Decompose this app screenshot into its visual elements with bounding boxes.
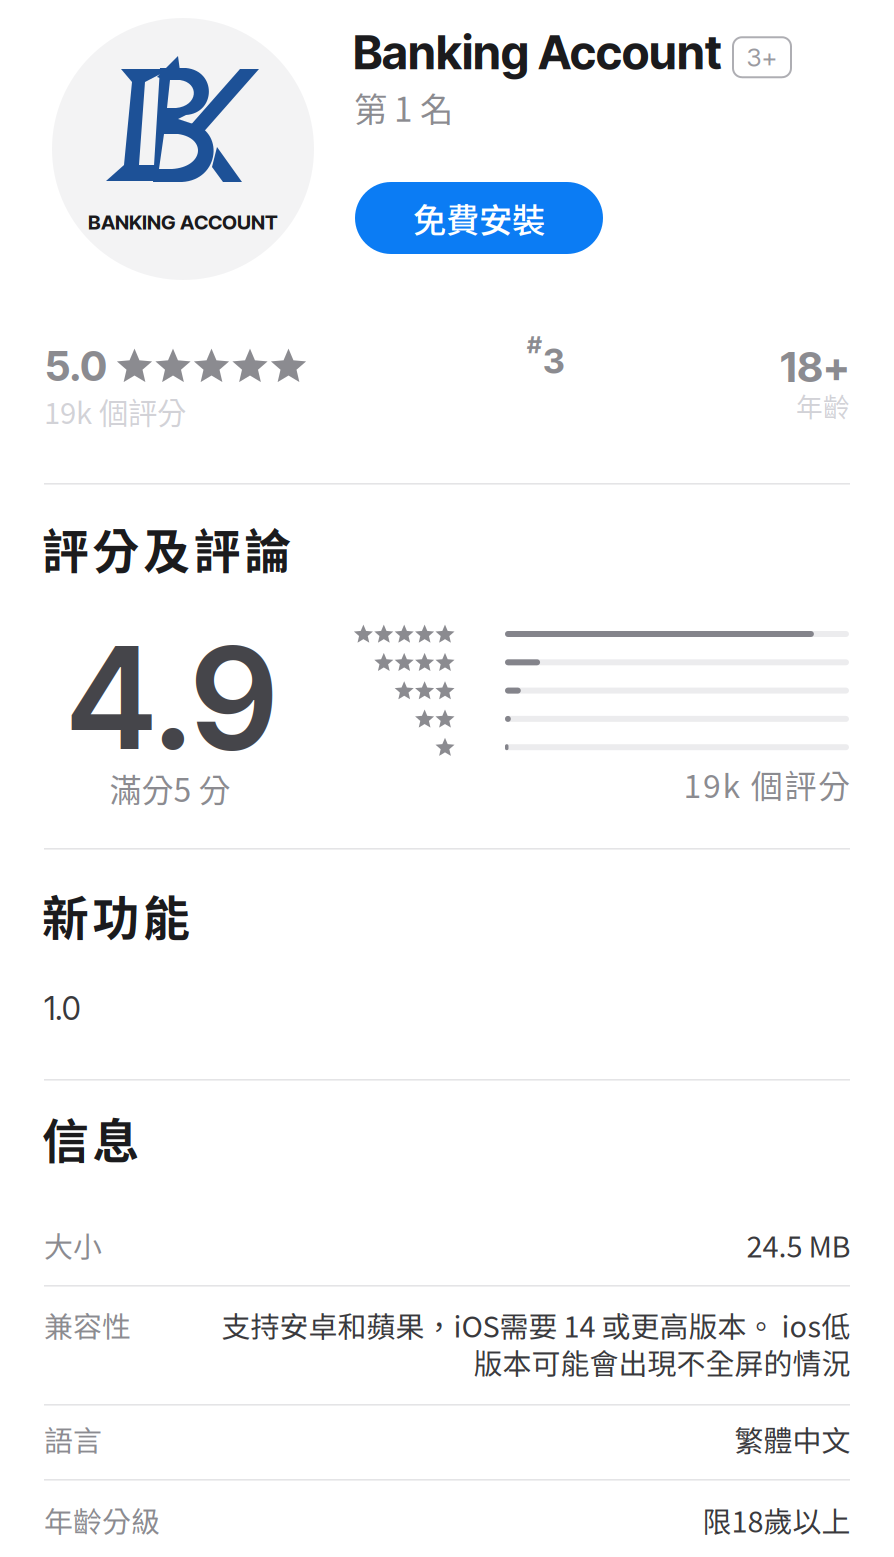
staticText: 免費安裝 xyxy=(413,194,545,242)
staticText: 3+ xyxy=(746,42,777,73)
staticText: 大小 xyxy=(44,1224,102,1266)
staticText: 年齡 xyxy=(796,386,850,425)
staticText: 語言 xyxy=(44,1418,102,1460)
staticText: 1.0 xyxy=(44,989,81,1028)
staticText: 3 xyxy=(543,340,565,382)
staticText: 18+ xyxy=(780,342,850,392)
staticText: 年齡分級 xyxy=(44,1499,160,1541)
staticText: 信息 xyxy=(42,1104,140,1172)
staticText: 限18歲以上 xyxy=(702,1499,850,1541)
staticText: 5.0 xyxy=(45,341,107,391)
staticText: 兼容性 xyxy=(44,1304,131,1346)
staticText: 19k 個評分 xyxy=(683,761,850,807)
staticText: 第 1 名 xyxy=(354,83,453,131)
staticText: # xyxy=(527,330,542,359)
staticText: 19k 個評分 xyxy=(44,390,186,432)
staticText: 繁體中文 xyxy=(734,1418,850,1460)
staticText: 4.9 xyxy=(67,612,277,783)
staticText: BANKING ACCOUNT xyxy=(88,210,278,234)
staticText: 新功能 xyxy=(42,881,190,949)
staticText: 評分及評論 xyxy=(42,514,291,582)
staticText: 24.5 MB xyxy=(746,1224,850,1266)
staticText: 支持安卓和蘋果，iOS需要 14 或更高版本。 ios低 版本可能會出現不全屏的… xyxy=(221,1304,850,1383)
staticText: 滿分5 分 xyxy=(109,765,230,811)
button[interactable]: 免費安裝 xyxy=(355,182,603,254)
staticText: Banking Account xyxy=(353,24,722,80)
